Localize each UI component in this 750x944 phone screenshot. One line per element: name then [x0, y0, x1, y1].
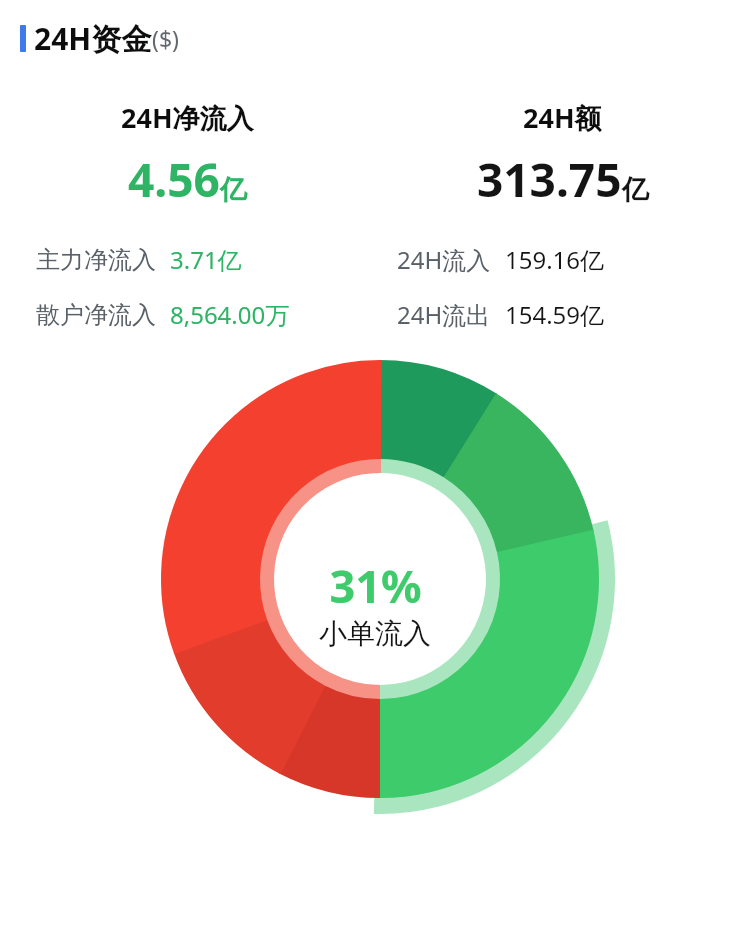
button[interactable]: 24H额	[375, 99, 750, 211]
staticText: 4.56	[128, 148, 220, 211]
button[interactable]: 24H净流入	[0, 99, 375, 211]
staticText: 313.75	[477, 148, 622, 211]
button[interactable]: 散户净流入	[0, 298, 375, 331]
staticText: 24H额	[523, 99, 602, 136]
staticText: 主力净流入	[36, 245, 156, 275]
staticText: 24H净流入	[121, 99, 254, 136]
staticText: 3.71亿	[170, 243, 242, 276]
staticText: 31%	[329, 555, 422, 616]
staticText: 小单流入	[319, 616, 431, 651]
staticText: 亿	[220, 173, 247, 207]
staticText: ($)	[152, 23, 179, 54]
button[interactable]: 24H资金	[0, 18, 750, 59]
staticText: 24H流出	[397, 298, 491, 331]
staticText: 159.16亿	[505, 243, 605, 276]
staticText: 24H流入	[397, 243, 491, 276]
button[interactable]: 24H capital flow distribution chart	[0, 361, 750, 861]
staticText: 154.59亿	[505, 298, 605, 331]
staticText: 8,564.00万	[170, 298, 290, 331]
staticText: 24H资金	[34, 18, 152, 59]
staticText: 散户净流入	[36, 300, 156, 330]
staticText: 亿	[622, 173, 649, 207]
button[interactable]: 24H流出	[375, 298, 750, 331]
button[interactable]: 24H流入	[375, 243, 750, 276]
button[interactable]: 主力净流入	[0, 243, 375, 276]
